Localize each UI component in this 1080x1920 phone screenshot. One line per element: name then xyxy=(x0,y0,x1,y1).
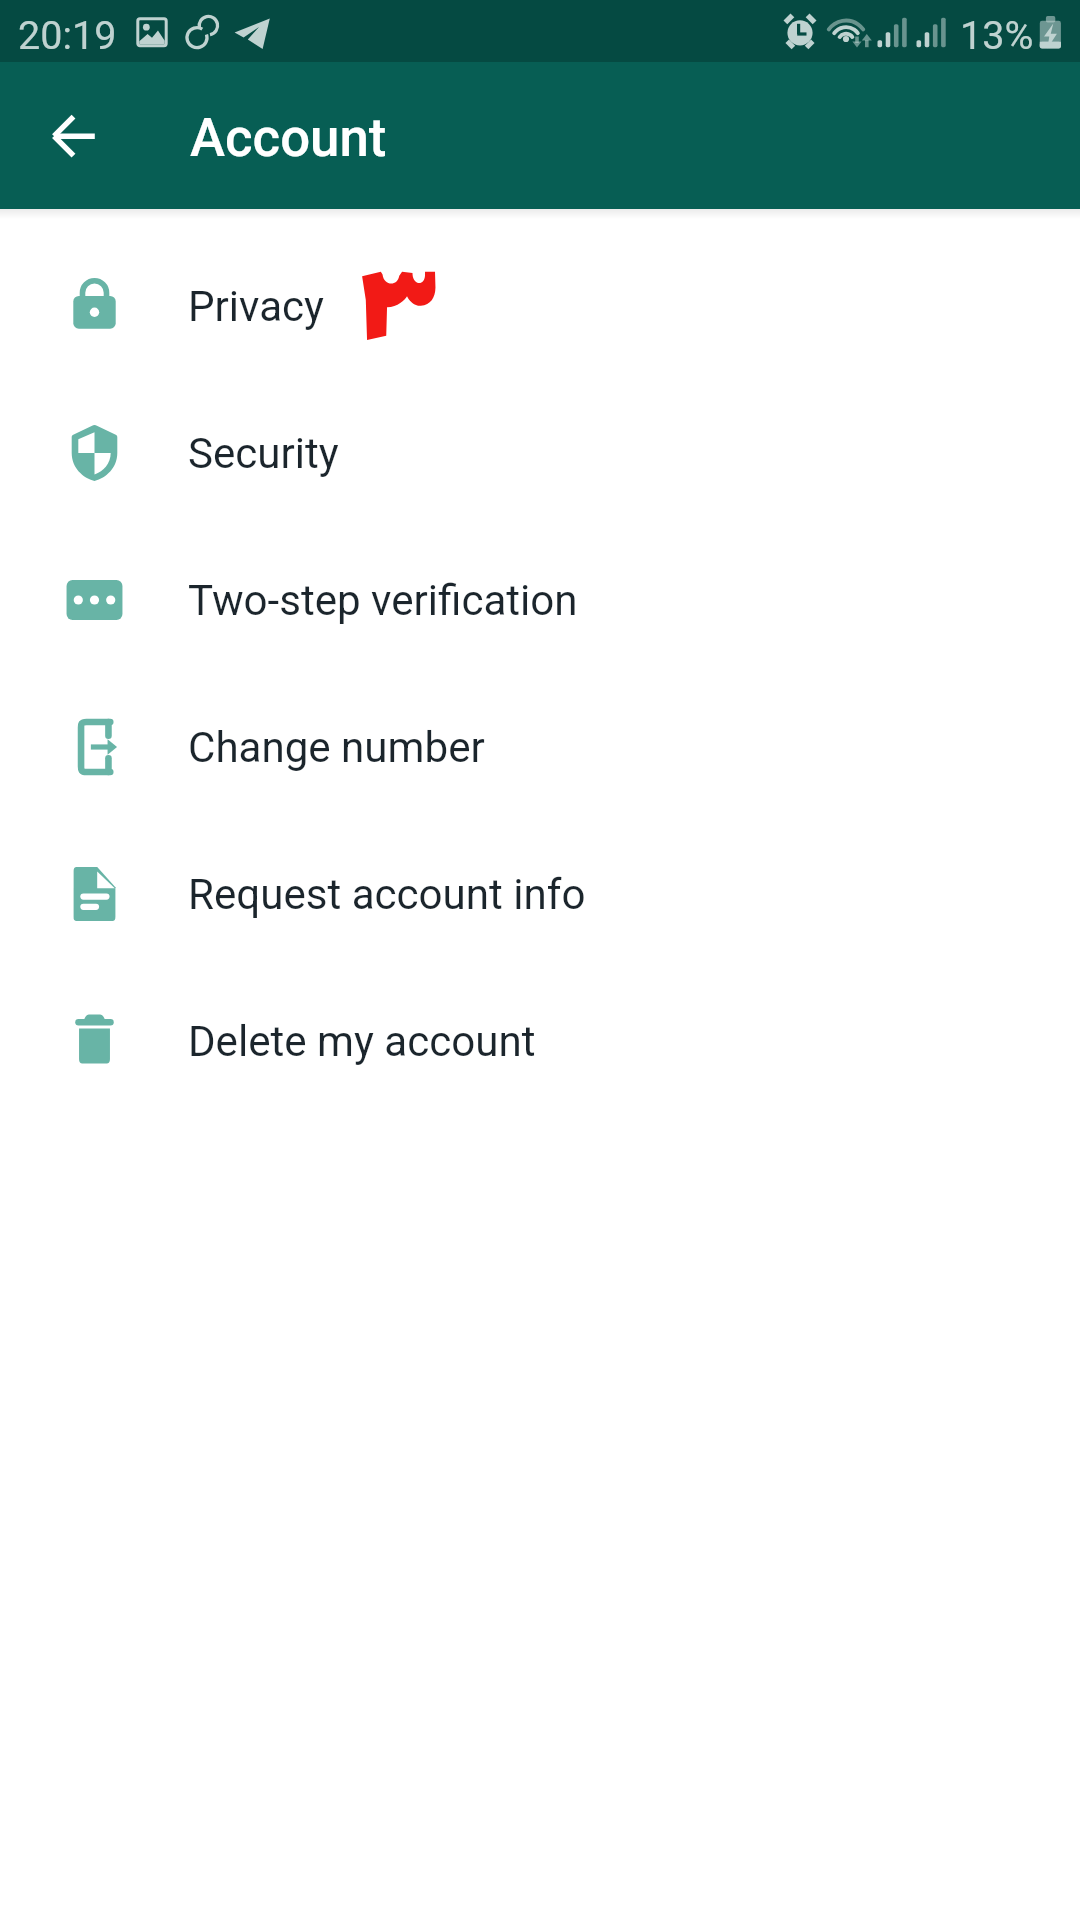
button[interactable]: Security xyxy=(0,380,1080,527)
staticText: Delete my account xyxy=(188,1017,536,1066)
staticText: Request account info xyxy=(188,870,586,919)
button[interactable]: Two-step verification xyxy=(0,527,1080,674)
button[interactable]: Delete my account xyxy=(0,968,1080,1115)
staticText: Privacy xyxy=(188,282,324,331)
staticText: Account xyxy=(190,107,387,169)
button[interactable]: Change number xyxy=(0,674,1080,821)
button[interactable]: Request account info xyxy=(0,821,1080,968)
staticText: Two-step verification xyxy=(188,576,578,625)
button[interactable]: Privacy xyxy=(0,233,1080,380)
button[interactable]: Back xyxy=(26,88,122,184)
staticText: 13% xyxy=(960,12,1034,58)
staticText: Change number xyxy=(188,723,485,772)
staticText: 20:19 xyxy=(18,12,117,58)
staticText: Security xyxy=(188,429,339,478)
